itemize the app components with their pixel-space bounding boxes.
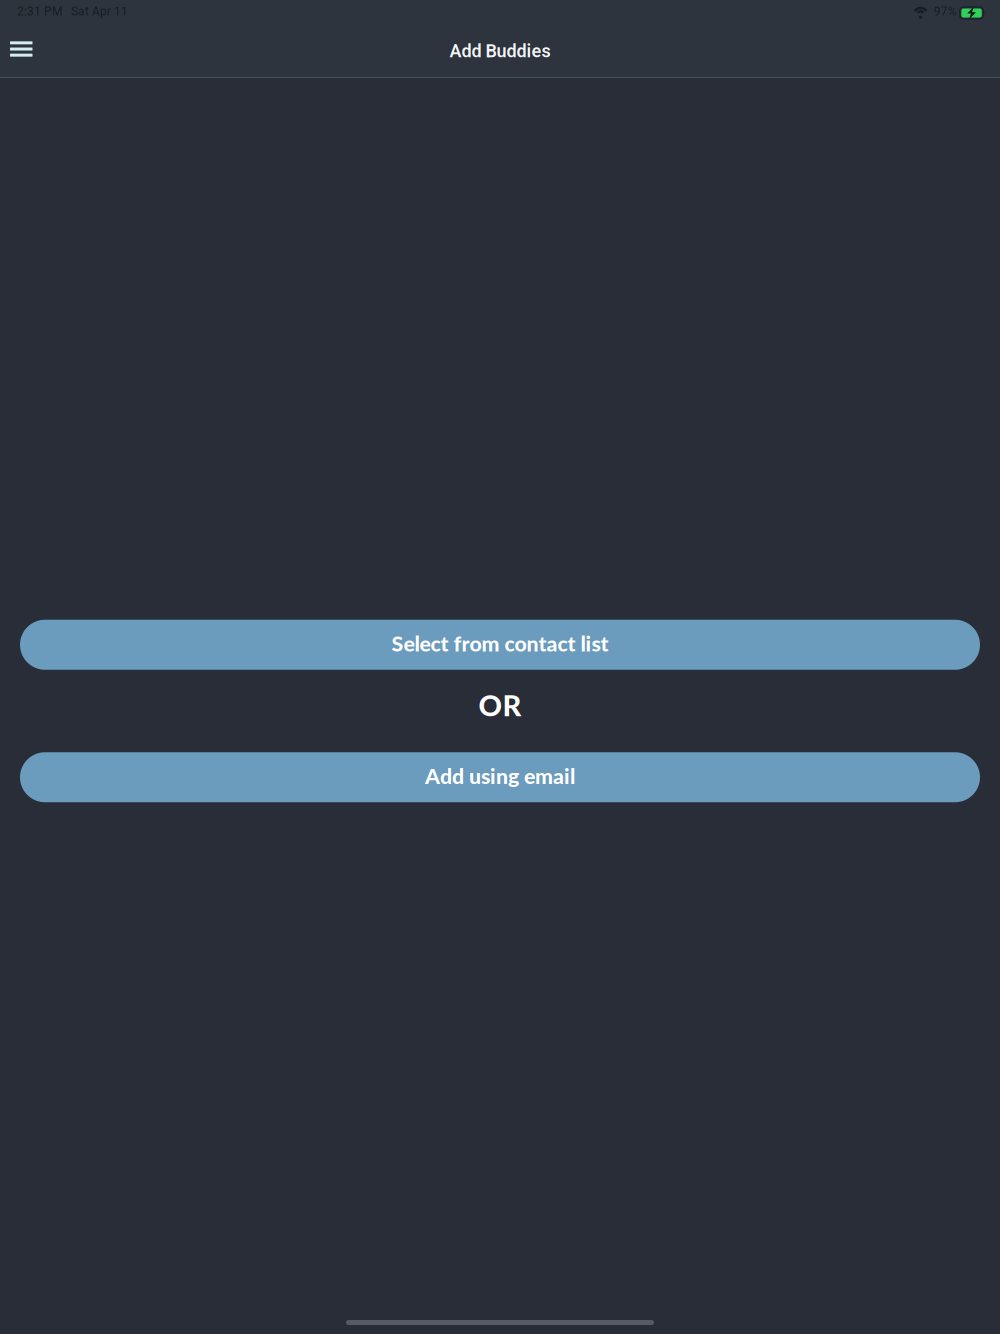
staticText: Sat Apr 11 [71, 4, 128, 18]
staticText: Add using email [425, 763, 575, 788]
button[interactable]: Add using email [20, 752, 980, 802]
button[interactable]: Select from contact list [20, 620, 980, 670]
staticText: 97% [934, 4, 957, 18]
staticText: OR [478, 688, 521, 722]
button[interactable]: Menu [0, 33, 46, 73]
staticText: Select from contact list [391, 630, 608, 656]
staticText: 2:31 PM [17, 4, 62, 18]
staticText: Add Buddies [449, 40, 550, 62]
